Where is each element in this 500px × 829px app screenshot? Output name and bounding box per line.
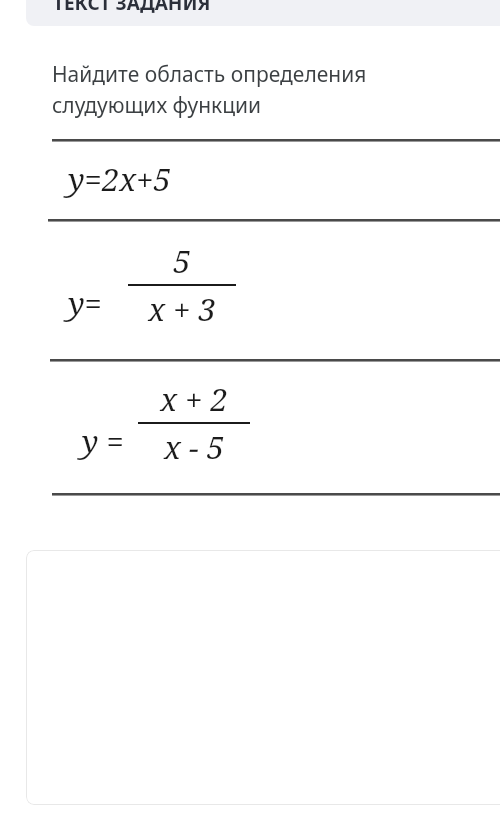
staticText: x − 5 [164, 426, 224, 468]
staticText: x + 2 [160, 378, 228, 420]
staticText: y=2x+5 [68, 158, 171, 200]
staticText: 5 [173, 240, 191, 282]
staticText: y = [82, 420, 124, 462]
staticText: y= [68, 282, 102, 324]
staticText: ТЕКСТ ЗАДАНИЯ [53, 0, 211, 16]
staticText: x + 3 [148, 288, 216, 330]
staticText: Найдите область определения слудующих фу… [52, 60, 500, 119]
button[interactable]: ТЕКСТ ЗАДАНИЯ [26, 0, 500, 26]
